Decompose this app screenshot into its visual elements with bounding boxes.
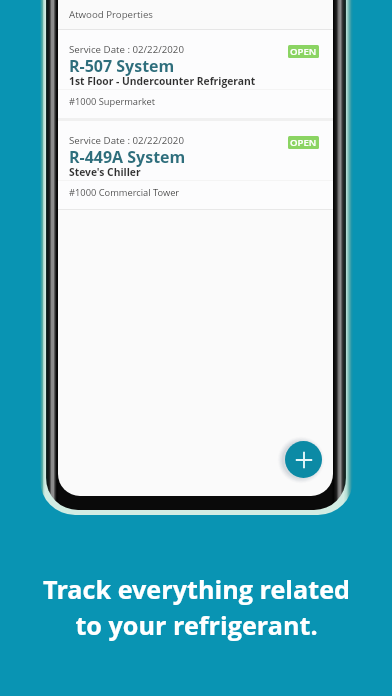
- staticText: Atwood Properties: [69, 8, 153, 21]
- staticText: OPEN: [290, 136, 317, 149]
- staticText: #1000 Supermarket: [69, 95, 156, 108]
- button[interactable]: OPEN: [288, 136, 319, 149]
- staticText: OPEN: [290, 45, 317, 58]
- button[interactable]: Add new service record: [285, 441, 322, 478]
- staticText: #1000 Commercial Tower: [69, 186, 180, 199]
- button[interactable]: OPEN: [288, 45, 319, 58]
- staticText: Service Date : 02/22/2020: [69, 134, 184, 147]
- button[interactable]: Service Date : 02/22/2020: [58, 30, 333, 118]
- staticText: Service Date : 02/22/2020: [69, 43, 184, 56]
- staticText: 1st Floor - Undercounter Refrigerant: [69, 74, 256, 88]
- button[interactable]: Service Date : 02/22/2020: [58, 121, 333, 209]
- staticText: R-507 System: [69, 55, 175, 77]
- staticText: Steve's Chiller: [69, 165, 141, 179]
- staticText: R-449A System: [69, 146, 186, 168]
- staticText: Track everything related to your refrige…: [43, 572, 350, 643]
